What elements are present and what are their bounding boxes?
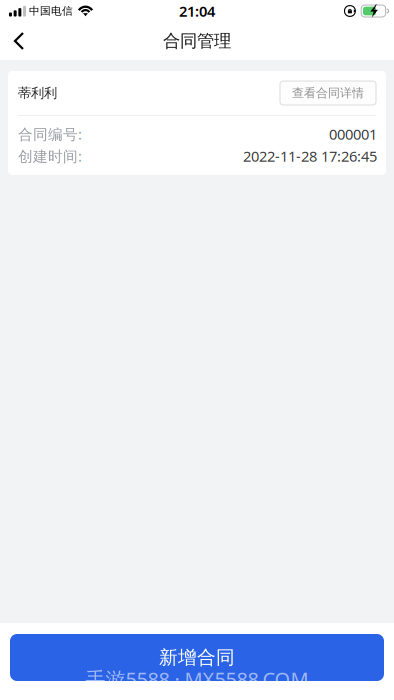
staticText: 手游5588 · MX5588.COM: [85, 666, 308, 692]
staticText: 合同编号:: [18, 124, 82, 144]
staticText: 新增合同: [159, 646, 235, 669]
button[interactable]: 查看合同详情: [280, 81, 376, 105]
staticText: 中国电信: [29, 4, 73, 17]
button[interactable]: 返回: [0, 22, 38, 60]
staticText: 000001: [329, 124, 377, 144]
staticText: 2022-11-28 17:26:45: [243, 146, 377, 166]
staticText: 蒂利利: [18, 85, 57, 101]
staticText: 合同管理: [163, 30, 231, 52]
button[interactable]: 新增合同: [10, 634, 384, 681]
staticText: 创建时间:: [18, 146, 82, 166]
staticText: 21:04: [179, 1, 215, 21]
staticText: 查看合同详情: [292, 86, 364, 100]
